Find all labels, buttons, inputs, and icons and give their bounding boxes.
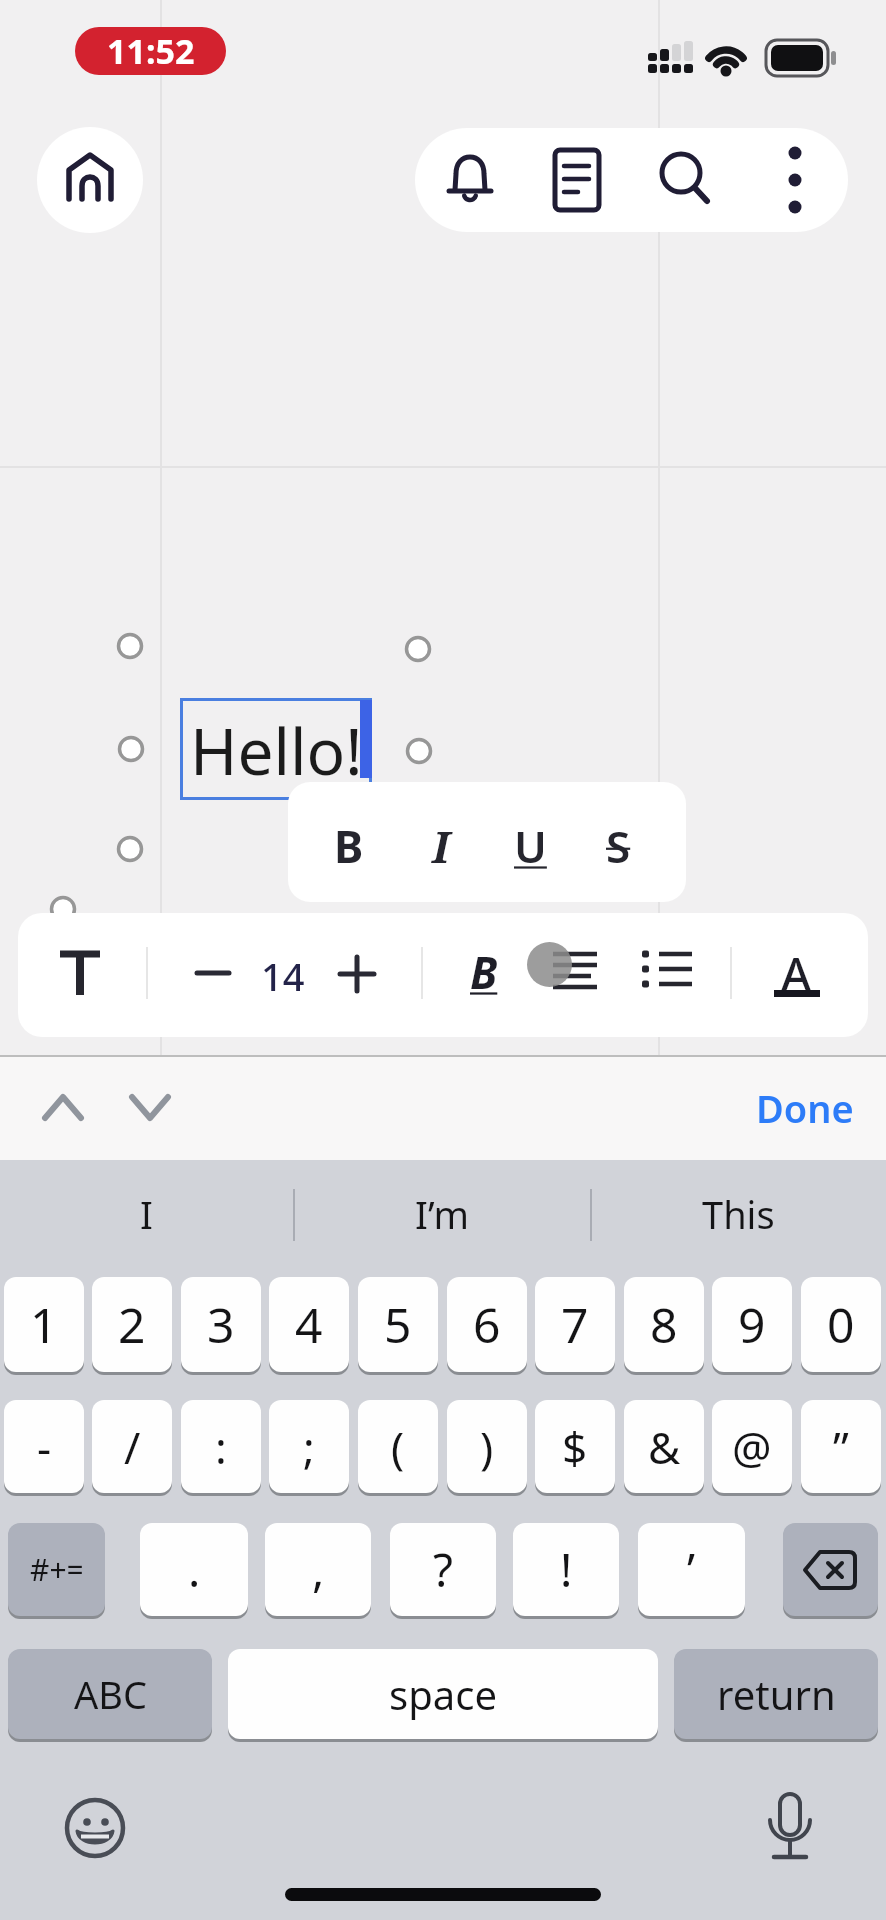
staticText: :: [215, 1417, 227, 1477]
staticText: S: [606, 816, 631, 876]
staticText: space: [389, 1667, 497, 1721]
button[interactable]: return: [674, 1649, 878, 1739]
button[interactable]: I: [0, 1166, 292, 1262]
button[interactable]: [127, 1090, 173, 1126]
staticText: 7: [561, 1292, 589, 1357]
staticText: Done: [756, 1082, 854, 1134]
staticText: #+=: [30, 1549, 84, 1590]
button[interactable]: 9: [712, 1277, 792, 1372]
staticText: 11:52: [107, 28, 195, 74]
staticText: ): [480, 1417, 494, 1477]
staticText: .: [188, 1538, 201, 1601]
button[interactable]: [62, 1795, 128, 1861]
button[interactable]: ?: [390, 1523, 496, 1616]
button[interactable]: [765, 1790, 815, 1865]
staticText: I: [432, 816, 450, 876]
staticText: (: [391, 1417, 405, 1477]
button[interactable]: [660, 150, 712, 208]
staticText: @: [732, 1417, 772, 1477]
staticText: 5: [384, 1292, 412, 1357]
button[interactable]: -: [4, 1400, 84, 1493]
button[interactable]: 4: [269, 1277, 349, 1372]
staticText: I: [140, 1188, 153, 1240]
button[interactable]: :: [181, 1400, 261, 1493]
button[interactable]: [37, 127, 143, 233]
staticText: 2: [118, 1292, 146, 1357]
button[interactable]: .: [140, 1523, 248, 1616]
staticText: /: [124, 1417, 141, 1477]
button[interactable]: [553, 952, 599, 992]
button[interactable]: $: [535, 1400, 615, 1493]
button[interactable]: 0: [801, 1277, 881, 1372]
button[interactable]: 11:52: [75, 27, 226, 75]
staticText: &: [648, 1417, 681, 1477]
button[interactable]: [446, 150, 494, 208]
staticText: $: [562, 1417, 588, 1477]
staticText: 9: [738, 1292, 766, 1357]
staticText: ,: [312, 1538, 325, 1601]
staticText: 0: [827, 1292, 855, 1357]
staticText: return: [717, 1667, 836, 1721]
button[interactable]: ): [447, 1400, 527, 1493]
staticText: 14: [261, 950, 305, 1002]
button[interactable]: 7: [535, 1277, 615, 1372]
button[interactable]: This: [592, 1166, 884, 1262]
button[interactable]: [553, 148, 601, 212]
staticText: This: [702, 1188, 775, 1240]
button[interactable]: &: [624, 1400, 704, 1493]
button[interactable]: [196, 958, 230, 988]
staticText: B: [334, 816, 364, 876]
staticText: 8: [650, 1292, 678, 1357]
button[interactable]: Done: [740, 1078, 870, 1138]
button[interactable]: 1: [4, 1277, 84, 1372]
button[interactable]: [783, 1523, 878, 1616]
button[interactable]: [180, 698, 372, 800]
staticText: ;: [303, 1417, 315, 1477]
staticText: 4: [295, 1292, 323, 1357]
staticText: 3: [207, 1292, 235, 1357]
button[interactable]: [775, 145, 815, 215]
button[interactable]: ’: [638, 1523, 745, 1616]
button[interactable]: ABC: [8, 1649, 212, 1739]
staticText: Hello!: [190, 707, 363, 794]
button[interactable]: !: [513, 1523, 619, 1616]
button[interactable]: 5: [358, 1277, 438, 1372]
button[interactable]: (: [358, 1400, 438, 1493]
button[interactable]: space: [228, 1649, 658, 1739]
button[interactable]: /: [92, 1400, 172, 1493]
button[interactable]: ;: [269, 1400, 349, 1493]
button[interactable]: #+=: [8, 1523, 105, 1616]
button[interactable]: I’m: [296, 1166, 588, 1262]
staticText: -: [37, 1417, 52, 1477]
staticText: ’: [687, 1538, 696, 1601]
staticText: U: [514, 816, 547, 876]
staticText: ”: [833, 1417, 849, 1477]
button[interactable]: ,: [265, 1523, 371, 1616]
button[interactable]: [58, 950, 102, 998]
button[interactable]: 6: [447, 1277, 527, 1372]
staticText: ?: [433, 1538, 453, 1601]
staticText: 1: [30, 1292, 58, 1357]
button[interactable]: 8: [624, 1277, 704, 1372]
staticText: A: [781, 942, 812, 1005]
button[interactable]: [340, 956, 376, 992]
staticText: I’m: [415, 1188, 469, 1240]
button[interactable]: [642, 950, 694, 992]
staticText: 6: [473, 1292, 501, 1357]
staticText: B: [470, 942, 498, 1002]
button[interactable]: 2: [92, 1277, 172, 1372]
button[interactable]: @: [712, 1400, 792, 1493]
staticText: ABC: [74, 1668, 147, 1720]
button[interactable]: [40, 1090, 86, 1126]
button[interactable]: ”: [801, 1400, 881, 1493]
staticText: !: [560, 1538, 573, 1601]
button[interactable]: 3: [181, 1277, 261, 1372]
